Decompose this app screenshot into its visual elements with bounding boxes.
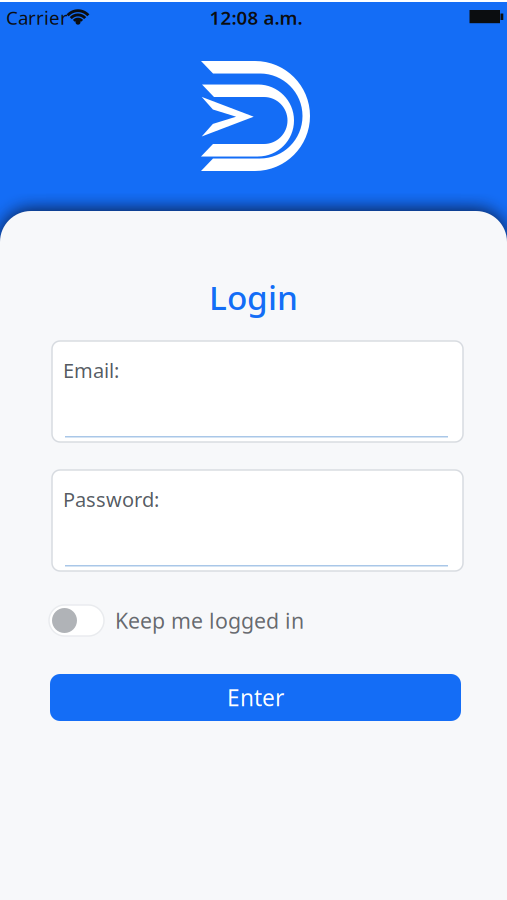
staticText: Carrier xyxy=(6,5,68,30)
button[interactable]: Password: xyxy=(52,470,463,571)
staticText: Keep me logged in xyxy=(115,606,304,635)
staticText: Password: xyxy=(63,486,159,513)
button[interactable]: Keep me logged in xyxy=(49,605,304,636)
staticText: Login xyxy=(209,275,298,319)
staticText: Email: xyxy=(63,357,119,384)
staticText: Enter xyxy=(227,682,284,712)
button[interactable]: Email: xyxy=(52,341,463,442)
button[interactable]: Enter xyxy=(50,674,461,721)
staticText: 12:08 a.m. xyxy=(209,5,302,30)
